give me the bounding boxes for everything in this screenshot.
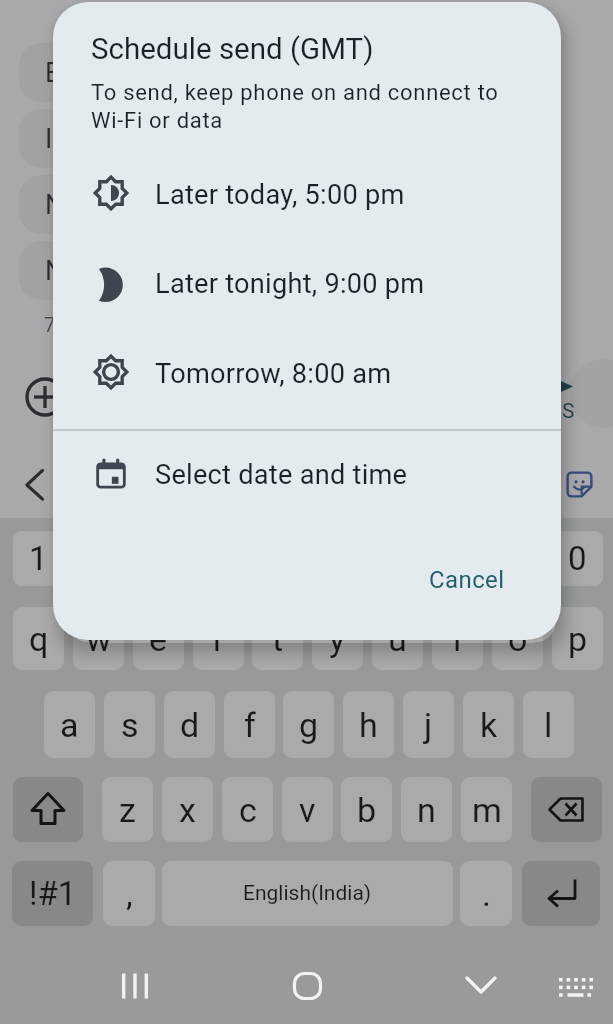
button[interactable]: m [461, 777, 512, 842]
button[interactable]: Stickers [566, 471, 593, 498]
staticText: u [388, 619, 407, 659]
button[interactable]: g [283, 691, 334, 758]
button[interactable]: j [403, 691, 454, 758]
button[interactable]: n [401, 777, 452, 842]
button[interactable]: d [164, 691, 215, 758]
button[interactable]: !#1 [12, 861, 93, 926]
button[interactable] [19, 43, 319, 102]
button[interactable]: English(India) [162, 861, 453, 926]
button[interactable]: Later today, 5:00 pm [53, 150, 561, 239]
button[interactable]: Recent apps [95, 959, 175, 1013]
button[interactable] [19, 109, 319, 168]
staticText: w [86, 619, 112, 659]
staticText: h [359, 705, 378, 745]
button[interactable]: Backspace [531, 777, 602, 842]
staticText: k [480, 705, 498, 745]
button[interactable] [19, 241, 319, 300]
button[interactable]: w [73, 607, 124, 670]
button[interactable]: 8 [432, 531, 483, 586]
button[interactable]: 9 [492, 531, 543, 586]
staticText: Later tonight, 9:00 pm [155, 268, 425, 300]
button[interactable]: Send SMS [569, 359, 613, 428]
staticText: n [417, 790, 436, 830]
staticText: t [272, 619, 284, 659]
button[interactable]: Select date and time [53, 429, 561, 521]
button[interactable]: h [343, 691, 394, 758]
staticText: z [119, 790, 136, 830]
staticText: !#1 [29, 874, 77, 913]
staticText: N [45, 189, 65, 221]
button[interactable]: Cancel [417, 552, 517, 608]
button[interactable]: t [252, 607, 303, 670]
button[interactable]: Home [268, 959, 348, 1013]
button[interactable]: u [372, 607, 423, 670]
staticText: 8 [448, 539, 467, 578]
button[interactable]: v [282, 777, 333, 842]
staticText: r [213, 619, 225, 659]
button[interactable]: Enter [522, 861, 600, 926]
staticText: e [149, 619, 168, 659]
staticText: English(India) [243, 881, 372, 906]
staticText: Cancel [429, 566, 505, 594]
staticText: S [562, 399, 575, 424]
button[interactable]: e [133, 607, 184, 670]
staticText: Schedule send (GMT) [91, 32, 374, 67]
staticText: 1 [29, 539, 48, 578]
button[interactable]: Keyboard switcher [539, 959, 611, 1013]
staticText: s [121, 705, 139, 745]
button[interactable]: x [162, 777, 213, 842]
button[interactable]: 0 [552, 531, 603, 586]
button[interactable]: Back [22, 465, 62, 505]
button[interactable]: Tomorrow, 8:00 am [53, 329, 561, 419]
button[interactable]: c [222, 777, 273, 842]
button[interactable]: Hide keyboard [441, 957, 521, 1011]
button[interactable]: r [193, 607, 244, 670]
staticText: d [180, 705, 200, 745]
staticText: j [424, 705, 433, 745]
staticText: , [126, 874, 133, 914]
button[interactable]: Add attachment [23, 375, 67, 419]
staticText: q [29, 619, 49, 659]
button[interactable]: , [103, 861, 155, 926]
button[interactable]: i [432, 607, 483, 670]
button[interactable]: Later tonight, 9:00 pm [53, 239, 561, 329]
staticText: B [45, 57, 62, 89]
button[interactable]: z [102, 777, 153, 842]
button[interactable]: q [13, 607, 64, 670]
button[interactable]: p [552, 607, 603, 670]
button[interactable]: y [312, 607, 363, 670]
staticText: i [453, 619, 462, 659]
staticText: I [45, 123, 53, 155]
staticText: b [357, 790, 377, 830]
button[interactable]: o [492, 607, 543, 670]
staticText: . [482, 874, 491, 914]
button[interactable]: . [460, 861, 512, 926]
button[interactable] [19, 175, 319, 234]
button[interactable]: b [341, 777, 392, 842]
staticText: Select date and time [155, 459, 408, 491]
staticText: f [244, 705, 256, 745]
button[interactable]: 1 [13, 531, 64, 586]
button[interactable]: s [104, 691, 155, 758]
button[interactable]: k [463, 691, 514, 758]
staticText: c [239, 790, 257, 830]
button[interactable]: a [44, 691, 95, 758]
button[interactable]: f [224, 691, 275, 758]
staticText: N [45, 255, 65, 287]
staticText: Tomorrow, 8:00 am [155, 358, 392, 390]
button[interactable]: l [523, 691, 574, 758]
staticText: Later today, 5:00 pm [155, 179, 405, 211]
button[interactable]: Shift [13, 777, 83, 842]
staticText: x [179, 790, 196, 830]
